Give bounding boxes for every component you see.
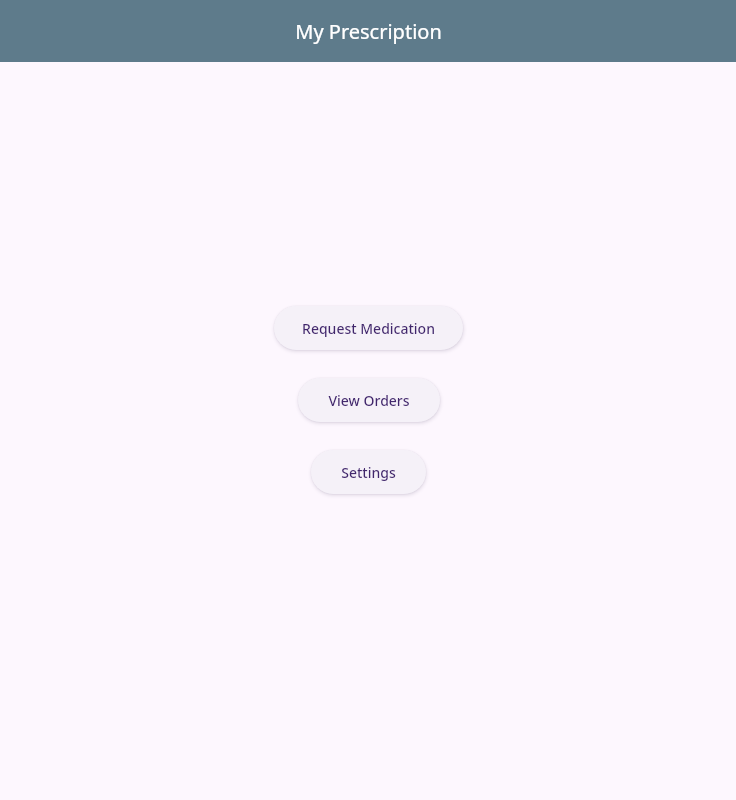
staticText: Request Medication bbox=[302, 319, 435, 338]
staticText: View Orders bbox=[328, 391, 410, 410]
staticText: Settings bbox=[341, 463, 396, 482]
button[interactable]: View Orders bbox=[298, 378, 440, 422]
staticText: My Prescription bbox=[295, 18, 442, 45]
button[interactable]: Settings bbox=[311, 450, 426, 494]
button[interactable]: Request Medication bbox=[274, 306, 463, 350]
